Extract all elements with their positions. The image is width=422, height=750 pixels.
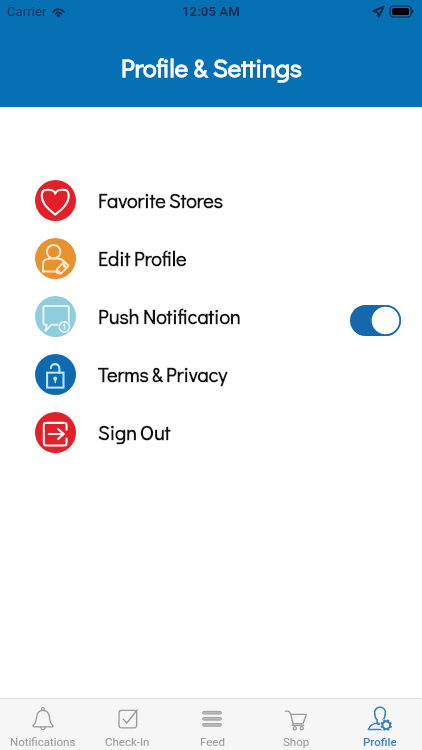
staticText: Out	[140, 419, 171, 445]
staticText: Profile	[134, 245, 187, 271]
staticText: Sign	[98, 419, 137, 445]
staticText: 12:05 AM	[182, 4, 240, 19]
button[interactable]: Edit	[0, 229, 422, 287]
staticText: Terms	[98, 361, 149, 387]
button[interactable]: Push notification toggle, on	[350, 305, 401, 336]
staticText: Notifications	[10, 735, 76, 748]
button[interactable]: Terms	[0, 345, 422, 403]
staticText: Push	[98, 303, 140, 329]
staticText: Edit	[98, 245, 131, 271]
staticText: Check-In	[105, 735, 150, 748]
button[interactable]: Check-In	[85, 699, 170, 748]
button[interactable]: Feed	[170, 699, 254, 748]
button[interactable]: Profile	[338, 699, 422, 748]
staticText: Shop	[283, 735, 310, 748]
staticText: Carrier	[7, 4, 47, 19]
button[interactable]: Notifications	[0, 699, 85, 748]
staticText: Privacy	[166, 361, 228, 387]
staticText: Profile	[363, 735, 397, 748]
staticText: &	[152, 361, 163, 387]
button[interactable]: Push	[0, 287, 422, 345]
staticText: Favorite	[98, 187, 166, 213]
button[interactable]: Sign	[0, 403, 422, 461]
button[interactable]: Favorite	[0, 171, 422, 229]
staticText: Feed	[200, 735, 225, 748]
button[interactable]: Shop	[254, 699, 338, 748]
staticText: Profile & Settings	[121, 50, 302, 83]
staticText: Notification	[143, 303, 241, 329]
staticText: Stores	[169, 187, 224, 213]
